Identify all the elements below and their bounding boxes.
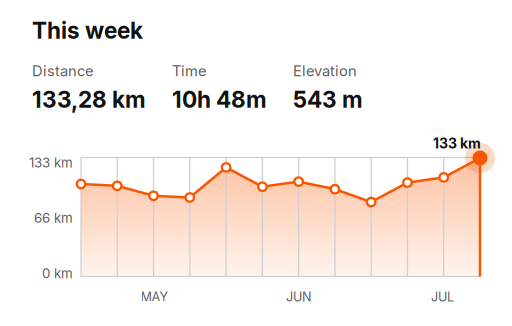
staticText: 10h 48m [172, 86, 267, 113]
staticText: 133,28 km [32, 86, 146, 113]
staticText: Distance [32, 62, 94, 80]
staticText: JUN [286, 289, 312, 304]
staticText: This week [32, 17, 143, 44]
button[interactable]: Time [172, 62, 284, 110]
button[interactable]: This week [32, 16, 182, 44]
staticText: Time [172, 62, 207, 80]
button[interactable]: Distance [32, 62, 162, 110]
staticText: 0 km [42, 265, 73, 281]
staticText: MAY [140, 289, 168, 304]
staticText: 133 km [29, 154, 73, 171]
staticText: Elevation [293, 62, 357, 80]
staticText: 66 km [34, 210, 73, 226]
staticText: JUL [431, 289, 454, 304]
button[interactable]: Elevation [293, 62, 413, 110]
staticText: 543 m [293, 86, 363, 113]
staticText: 133 km [433, 135, 481, 152]
